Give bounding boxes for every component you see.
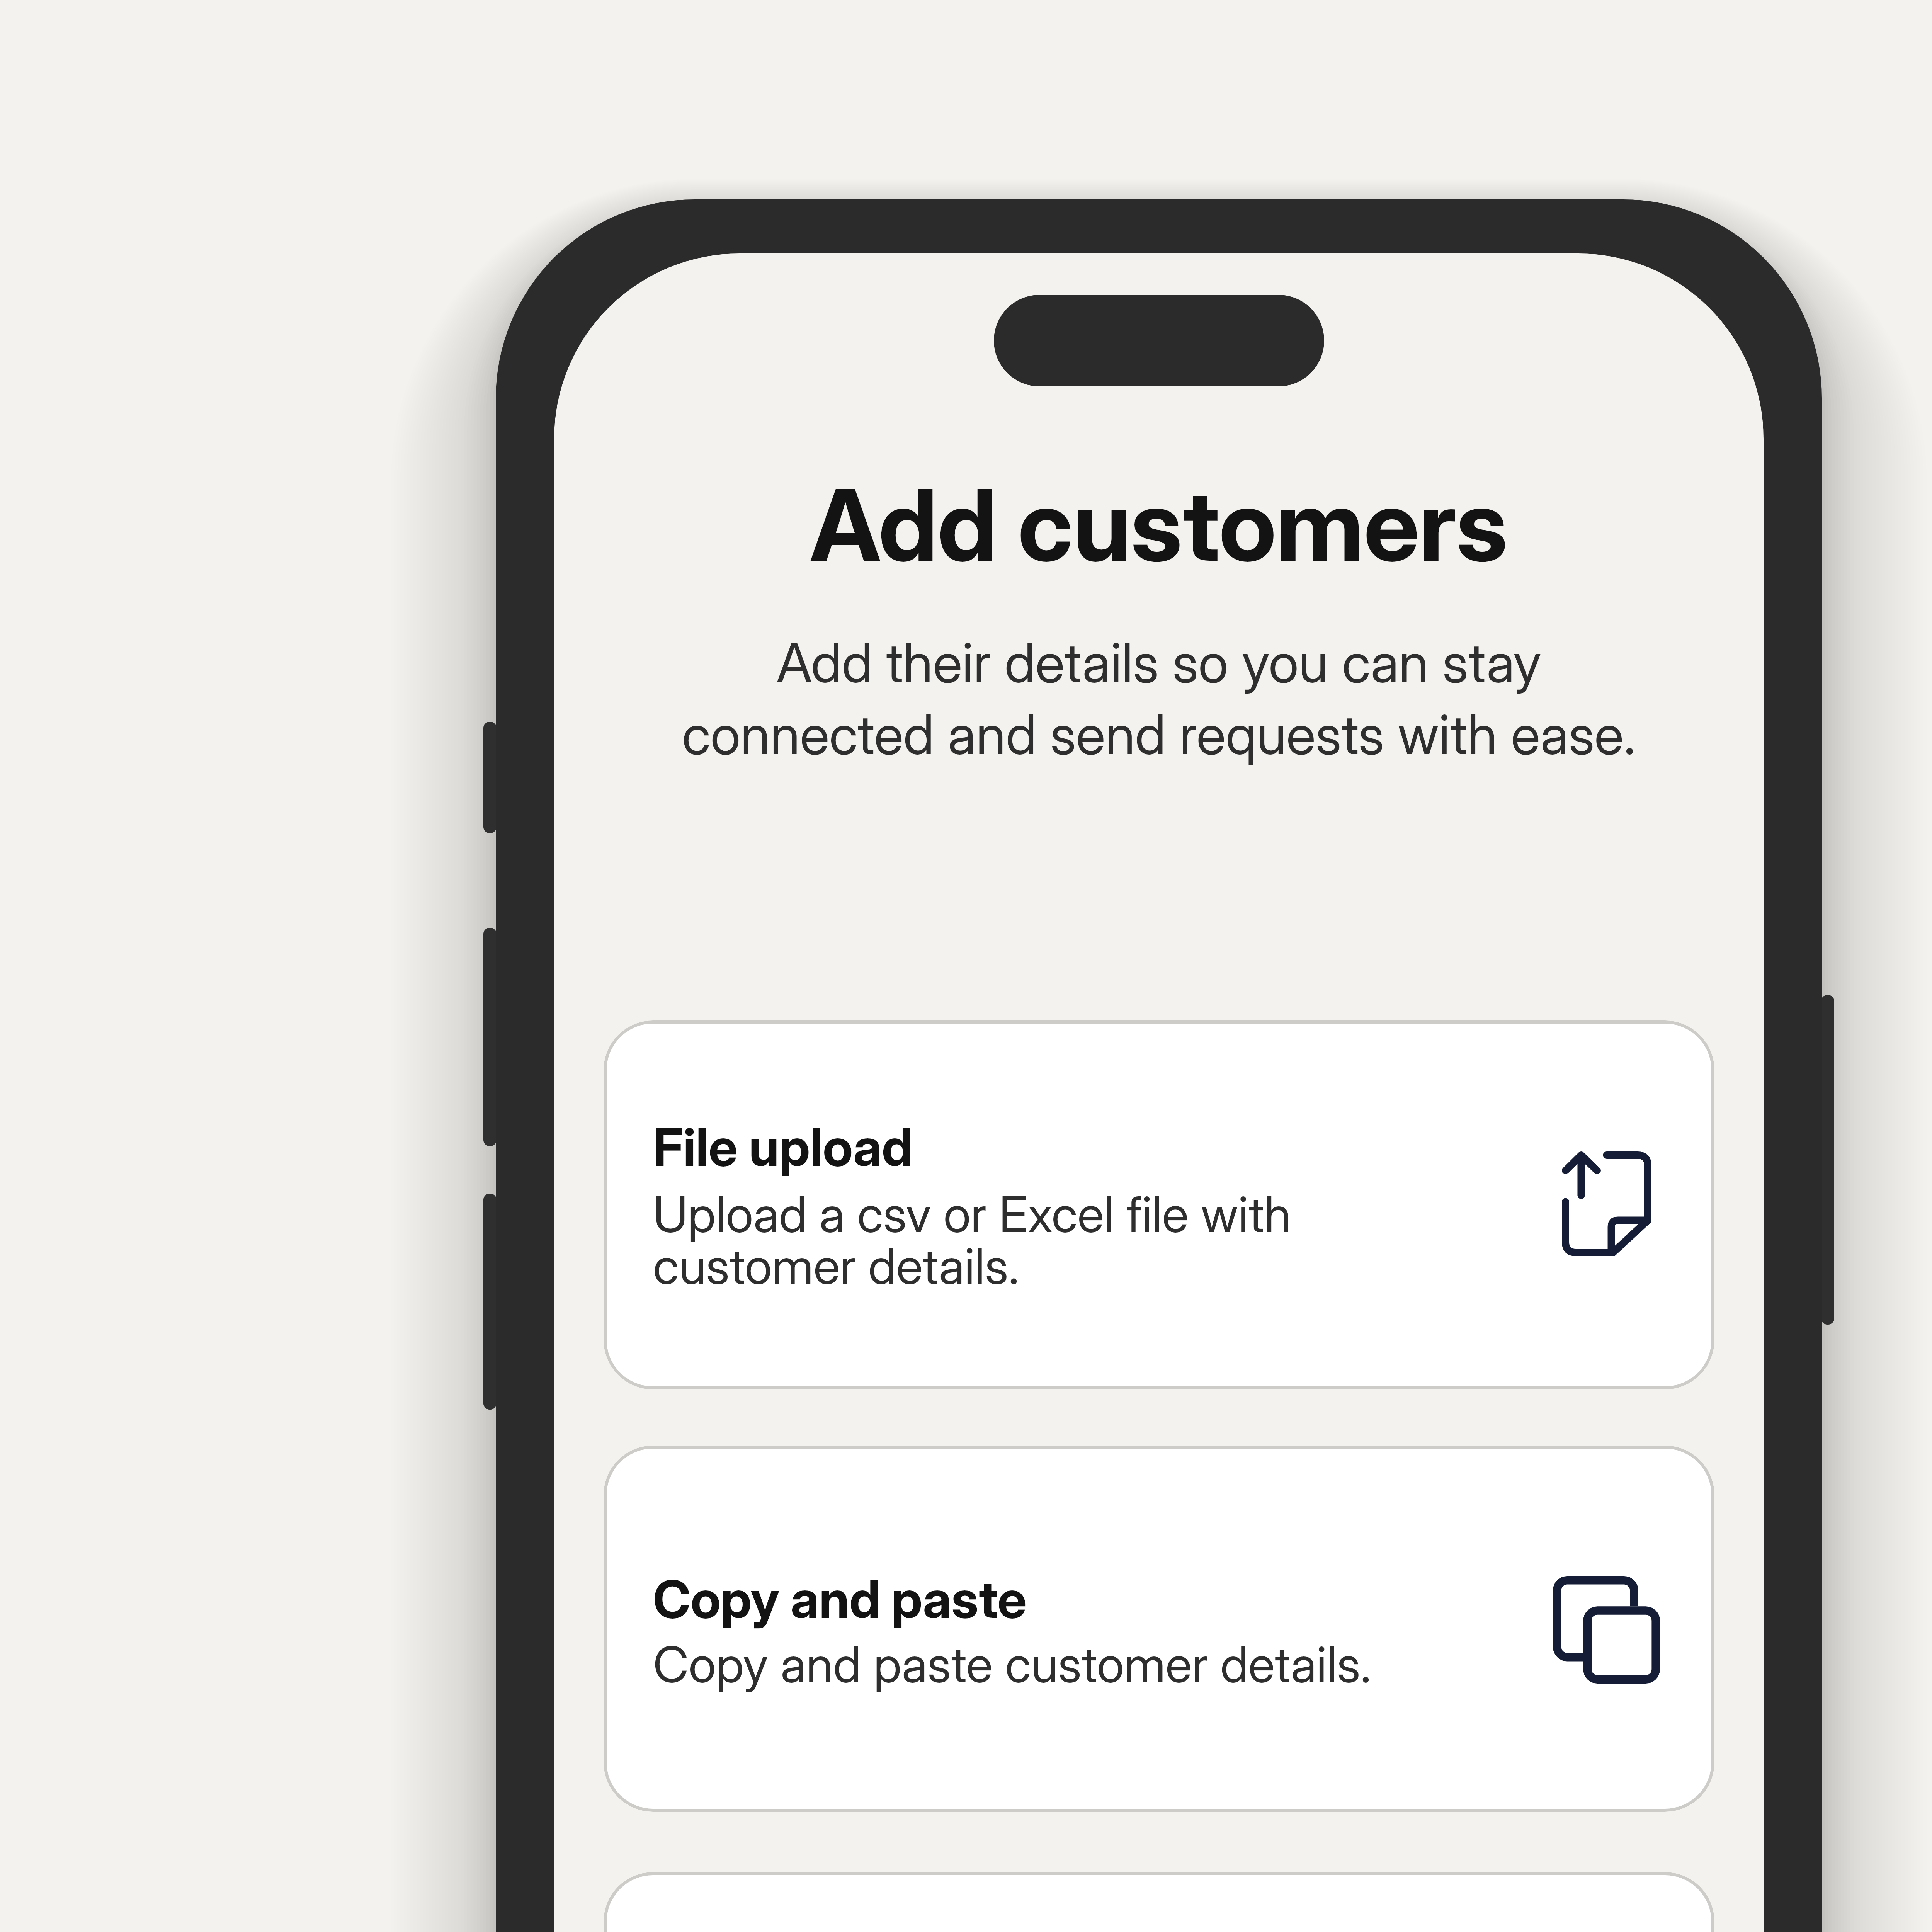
button[interactable]: Copy and paste <box>604 1446 1714 1812</box>
button[interactable]: Google sheets import <box>604 1872 1714 1932</box>
staticText: Add customers <box>554 465 1764 585</box>
staticText: Upload a csv or Excel file with customer… <box>653 1184 1291 1296</box>
staticText: Copy and paste <box>653 1568 1027 1630</box>
staticText: File upload <box>653 1116 913 1178</box>
other: Copy and paste <box>1553 1576 1660 1684</box>
staticText: Copy and paste customer details. <box>653 1634 1371 1694</box>
other: File upload <box>1562 1151 1651 1256</box>
button[interactable]: File upload <box>604 1020 1714 1389</box>
staticText: Add their details so you can stay connec… <box>554 629 1764 767</box>
